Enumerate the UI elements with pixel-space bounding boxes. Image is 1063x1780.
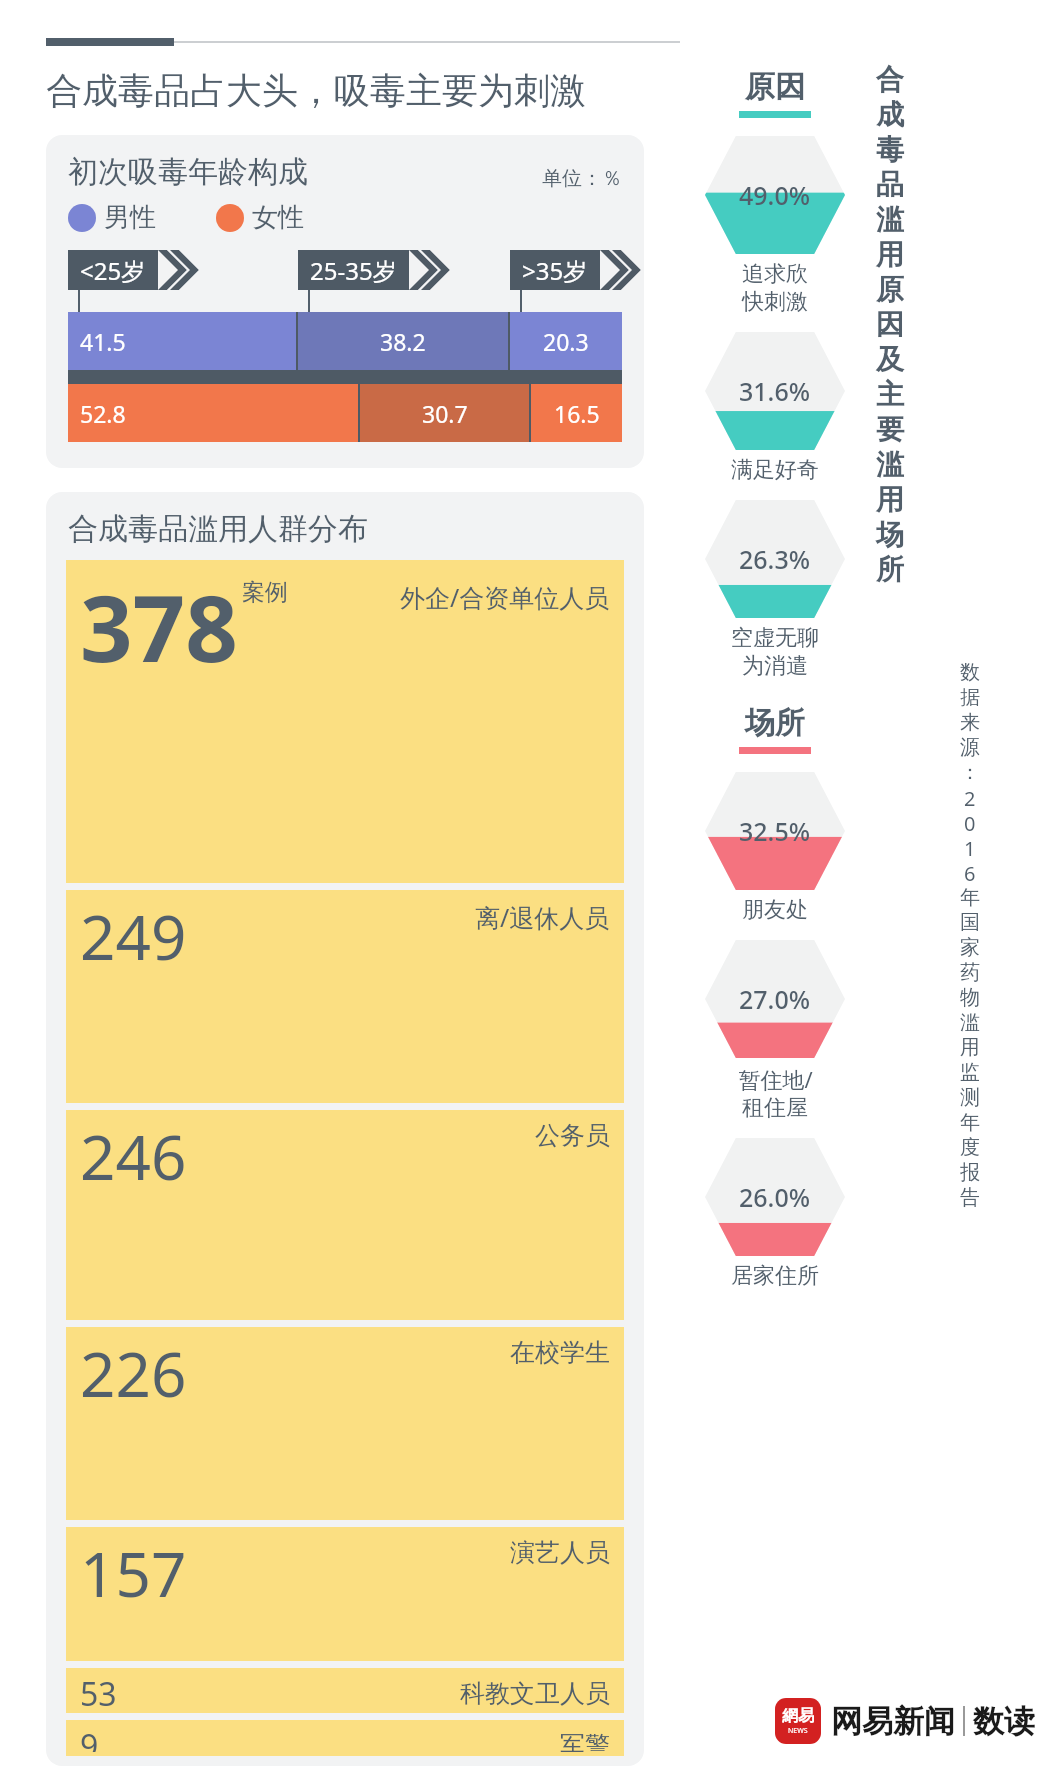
staticText: 31.6% bbox=[739, 374, 811, 408]
button[interactable]: 249 bbox=[66, 890, 624, 1103]
staticText: 品 bbox=[876, 167, 904, 202]
staticText: 41.5 bbox=[80, 326, 126, 357]
staticText: 用 bbox=[960, 1035, 980, 1060]
staticText: 所 bbox=[876, 552, 904, 587]
staticText: 年 bbox=[960, 885, 980, 910]
button[interactable]: >35岁 bbox=[510, 250, 644, 290]
button[interactable]: 20.3 bbox=[510, 312, 622, 370]
staticText: 原 bbox=[876, 272, 904, 307]
staticText: 合成毒品滥用人群分布 bbox=[68, 510, 368, 548]
button[interactable]: <25岁 bbox=[68, 250, 202, 290]
staticText: 26.0% bbox=[739, 1180, 811, 1214]
staticText: 用 bbox=[876, 482, 904, 517]
staticText: 报 bbox=[960, 1160, 980, 1185]
staticText: 滥 bbox=[960, 1010, 980, 1035]
staticText: 度 bbox=[960, 1135, 980, 1160]
staticText: 27.0% bbox=[739, 982, 811, 1016]
staticText: >35岁 bbox=[522, 254, 588, 287]
staticText: 单位：％ bbox=[542, 166, 622, 191]
staticText: 成 bbox=[876, 97, 904, 132]
staticText: 26.3% bbox=[739, 542, 811, 576]
staticText: 1 bbox=[964, 835, 976, 860]
staticText: 科教文卫人员 bbox=[460, 1678, 610, 1709]
staticText: 246 bbox=[80, 1114, 187, 1198]
staticText: 因 bbox=[876, 307, 904, 342]
staticText: 20.3 bbox=[543, 326, 589, 357]
staticText: 原因 bbox=[745, 68, 805, 106]
staticText: 家 bbox=[960, 935, 980, 960]
button[interactable]: 32.5% bbox=[700, 772, 850, 924]
staticText: 监 bbox=[960, 1060, 980, 1085]
staticText: 租住屋 bbox=[742, 1094, 808, 1122]
button[interactable]: 网易新闻 数读 bbox=[775, 1698, 1035, 1744]
staticText: 女性 bbox=[252, 201, 304, 234]
staticText: 测 bbox=[960, 1085, 980, 1110]
staticText: 要 bbox=[876, 412, 904, 447]
staticText: 暂住地/ bbox=[738, 1064, 813, 1094]
button[interactable]: 27.0% bbox=[700, 940, 850, 1122]
staticText: 32.5% bbox=[739, 814, 811, 848]
staticText: 年 bbox=[960, 1110, 980, 1135]
staticText: 226 bbox=[80, 1331, 187, 1415]
staticText: 数读 bbox=[973, 1702, 1035, 1741]
button[interactable]: 31.6% bbox=[700, 332, 850, 484]
staticText: 2 bbox=[964, 785, 976, 810]
staticText: 249 bbox=[80, 894, 187, 978]
staticText: 数 bbox=[960, 660, 980, 685]
staticText: 演艺人员 bbox=[510, 1537, 610, 1568]
staticText: 毒 bbox=[876, 132, 904, 167]
staticText: 据 bbox=[960, 685, 980, 710]
staticText: 16.5 bbox=[554, 398, 600, 429]
staticText: 378 bbox=[80, 564, 238, 689]
staticText: 追求欣 bbox=[742, 260, 808, 288]
staticText: 朋友处 bbox=[742, 896, 808, 924]
button[interactable]: 53 bbox=[66, 1668, 624, 1713]
staticText: 居家住所 bbox=[731, 1262, 819, 1290]
staticText: 滥 bbox=[876, 447, 904, 482]
staticText: 52.8 bbox=[80, 398, 126, 429]
staticText: ： bbox=[960, 760, 980, 785]
button[interactable]: 25-35岁 bbox=[298, 250, 453, 290]
staticText: 主 bbox=[876, 377, 904, 412]
staticText: 初次吸毒年龄构成 bbox=[68, 153, 308, 191]
button[interactable]: 26.0% bbox=[700, 1138, 850, 1290]
staticText: 53 bbox=[80, 1672, 117, 1709]
staticText: 离/退休人员 bbox=[475, 900, 610, 934]
staticText: 公务员 bbox=[535, 1120, 610, 1151]
staticText: 25-35岁 bbox=[310, 254, 397, 287]
button[interactable]: 场所 bbox=[700, 704, 850, 754]
staticText: 药 bbox=[960, 960, 980, 985]
staticText: 49.0% bbox=[739, 178, 811, 212]
button[interactable]: 157 bbox=[66, 1527, 624, 1661]
staticText: 场 bbox=[876, 517, 904, 552]
staticText: 38.2 bbox=[380, 326, 426, 357]
staticText: 案例 bbox=[242, 578, 288, 607]
button[interactable]: 52.8 bbox=[68, 384, 358, 442]
button[interactable]: 226 bbox=[66, 1327, 624, 1520]
staticText: 合成毒品占大头，吸毒主要为刺激 bbox=[46, 68, 586, 113]
button[interactable]: 原因 bbox=[700, 68, 850, 118]
button[interactable]: 38.2 bbox=[298, 312, 508, 370]
button[interactable]: 26.3% bbox=[700, 500, 850, 680]
button[interactable]: 16.5 bbox=[531, 384, 622, 442]
staticText: 0 bbox=[964, 810, 976, 835]
button[interactable]: 9 bbox=[66, 1720, 624, 1756]
button[interactable]: 49.0% bbox=[700, 136, 850, 316]
staticText: 快刺激 bbox=[742, 288, 808, 316]
staticText: 及 bbox=[876, 342, 904, 377]
button[interactable]: 378 bbox=[66, 560, 624, 883]
staticText: 告 bbox=[960, 1185, 980, 1210]
staticText: 源 bbox=[960, 735, 980, 760]
button[interactable]: 41.5 bbox=[68, 312, 296, 370]
staticText: <25岁 bbox=[80, 254, 146, 287]
staticText: 场所 bbox=[745, 704, 805, 742]
staticText: 空虚无聊 bbox=[731, 624, 819, 652]
staticText: 男性 bbox=[104, 201, 156, 234]
button[interactable]: 30.7 bbox=[360, 384, 529, 442]
staticText: 物 bbox=[960, 985, 980, 1010]
staticText: 6 bbox=[964, 860, 976, 885]
staticText: 满足好奇 bbox=[731, 456, 819, 484]
staticText: 用 bbox=[876, 237, 904, 272]
staticText: 军警 bbox=[560, 1730, 610, 1752]
button[interactable]: 246 bbox=[66, 1110, 624, 1320]
